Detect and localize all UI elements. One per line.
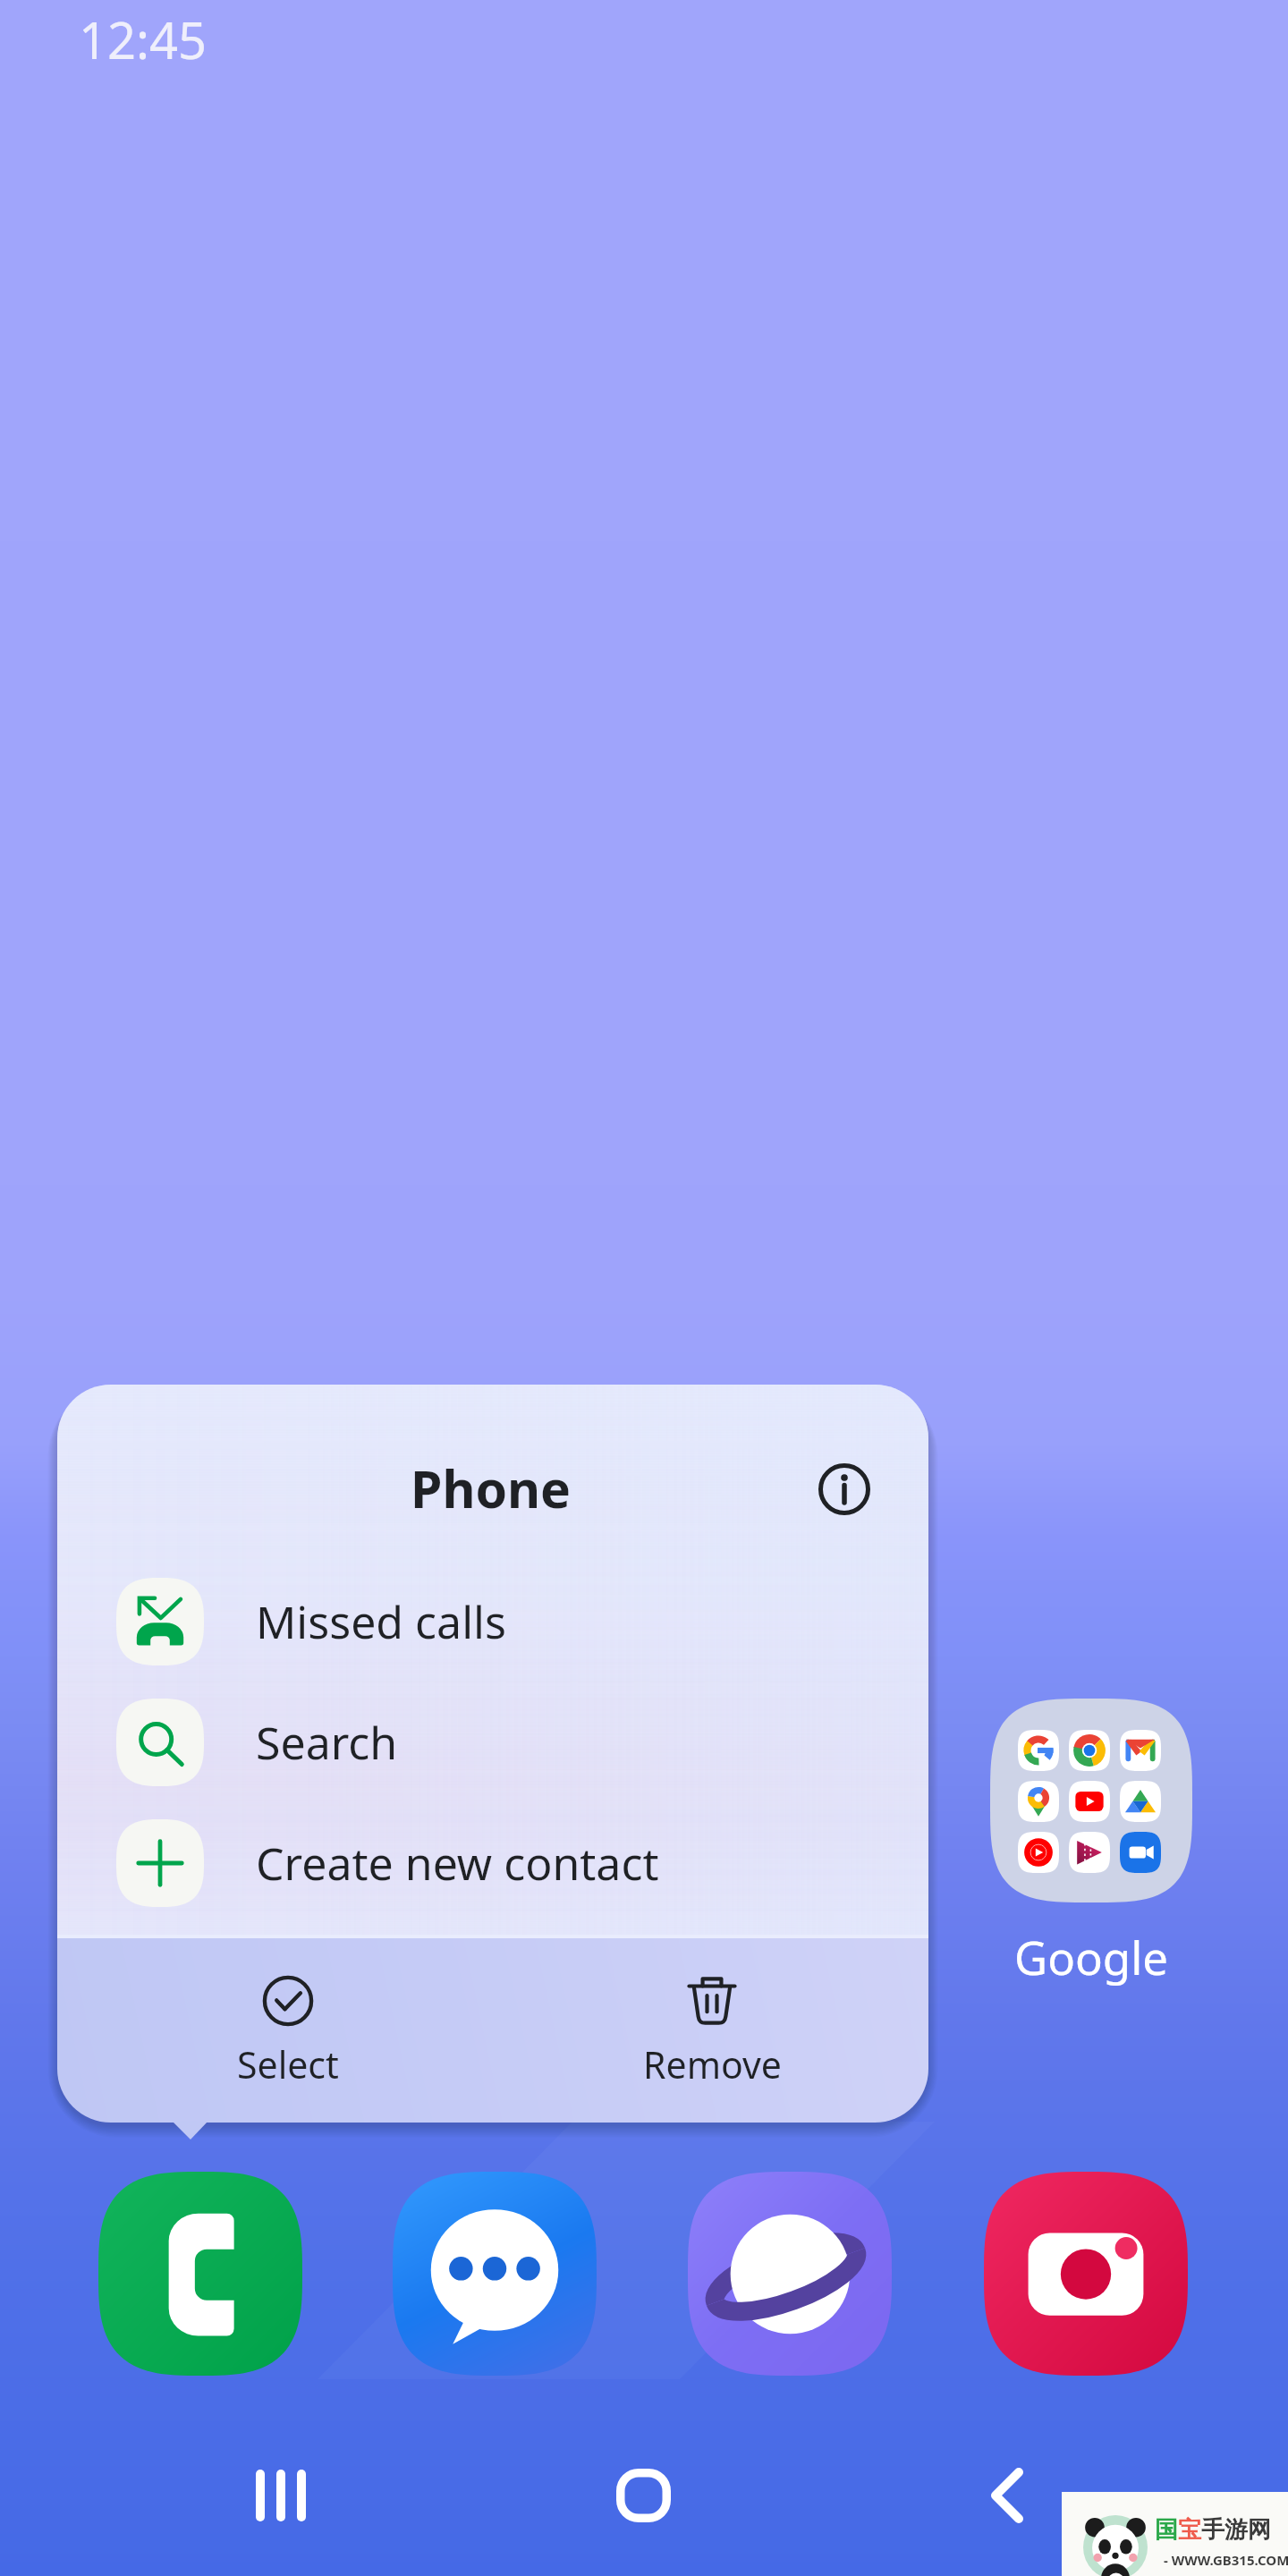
button[interactable]: Google	[990, 1699, 1192, 1987]
staticText: 国	[1155, 2515, 1178, 2545]
button[interactable]: Home	[572, 2424, 715, 2567]
button[interactable]: Search	[57, 1682, 928, 1802]
staticText: Missed calls	[256, 1591, 506, 1652]
staticText: Phone	[411, 1453, 572, 1523]
button[interactable]: Create new contact	[57, 1803, 928, 1923]
staticText: Google	[1014, 1926, 1169, 1987]
staticText: 12:45	[79, 5, 208, 73]
button[interactable]: Internet	[688, 2172, 892, 2376]
button[interactable]: Remove	[533, 1955, 891, 2116]
staticText: 手游网	[1201, 2515, 1271, 2545]
staticText: Search	[256, 1712, 398, 1773]
staticText: Remove	[643, 2039, 782, 2089]
staticText: Create new contact	[256, 1833, 659, 1894]
button[interactable]: Recent apps	[209, 2424, 352, 2567]
staticText: Select	[237, 2039, 339, 2089]
button[interactable]: App info	[805, 1450, 884, 1529]
button[interactable]: Messages	[393, 2172, 597, 2376]
button[interactable]: Phone	[98, 2172, 302, 2376]
button[interactable]: Camera	[984, 2172, 1188, 2376]
staticText: - WWW.GB315.COM -	[1164, 2551, 1288, 2569]
staticText: 宝	[1178, 2515, 1201, 2545]
button[interactable]: Missed calls	[57, 1562, 928, 1682]
button[interactable]: Select	[109, 1955, 467, 2116]
button[interactable]: Back	[936, 2424, 1079, 2567]
